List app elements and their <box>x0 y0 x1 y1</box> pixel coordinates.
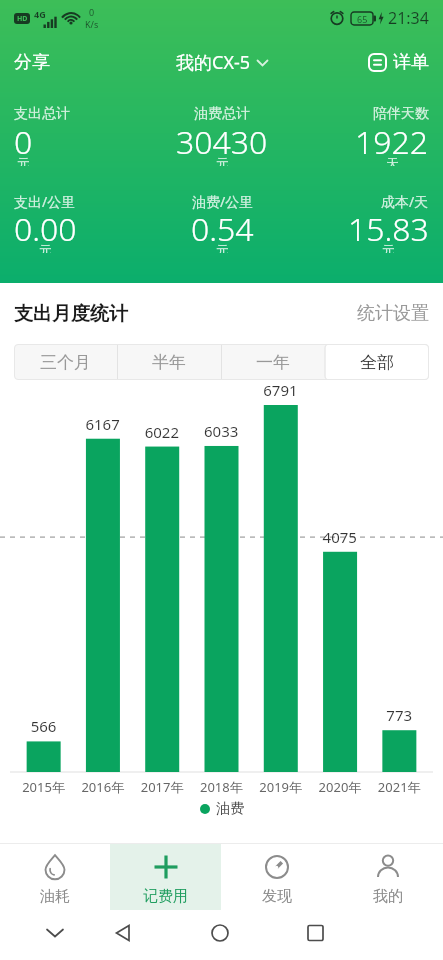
staticText: 支出/公里 <box>14 192 76 210</box>
staticText: 0 <box>89 6 95 18</box>
staticText: 记费用 <box>143 887 188 906</box>
staticText: 成本/天 <box>381 192 429 210</box>
button[interactable]: 我的CX-5 <box>176 50 268 75</box>
staticText: 油耗 <box>40 887 70 906</box>
staticText: 元 <box>17 155 30 166</box>
staticText: 油费总计 <box>194 105 250 123</box>
staticText: 我的 <box>373 887 403 906</box>
button[interactable]: 一年 <box>221 344 325 380</box>
staticText: 三个月 <box>40 352 91 373</box>
button[interactable] <box>99 910 147 956</box>
button[interactable] <box>196 910 244 956</box>
button[interactable]: 统计设置 <box>357 302 429 325</box>
staticText: 65 <box>357 13 368 25</box>
staticText: K/s <box>85 18 99 30</box>
button[interactable]: 油耗 <box>0 844 110 910</box>
button[interactable]: 记费用 <box>110 844 221 910</box>
staticText: 油费/公里 <box>192 192 254 210</box>
staticText: 一年 <box>256 352 290 373</box>
staticText: 详单 <box>393 51 429 74</box>
button[interactable]: 半年 <box>117 344 221 380</box>
staticText: 支出月度统计 <box>14 302 128 326</box>
staticText: 15.83 <box>348 207 429 243</box>
staticText: 4G <box>34 8 46 20</box>
staticText: HD <box>17 14 28 24</box>
staticText: 陪伴天数 <box>373 105 429 123</box>
staticText: 0.54 <box>191 207 254 243</box>
button[interactable]: 发现 <box>221 844 332 910</box>
staticText: 半年 <box>152 352 186 373</box>
staticText: 我的CX-5 <box>176 50 251 75</box>
staticText: 21:34 <box>388 7 429 29</box>
staticText: 油费 <box>216 800 244 818</box>
staticText: 统计设置 <box>357 302 429 325</box>
staticText: 1922 <box>355 120 429 156</box>
staticText: 全部 <box>360 352 394 373</box>
button[interactable] <box>31 910 79 956</box>
staticText: 元 <box>216 242 229 253</box>
button[interactable]: 分享 <box>14 51 50 74</box>
staticText: 天 <box>386 155 399 166</box>
staticText: 发现 <box>262 887 292 906</box>
button[interactable]: 三个月 <box>14 344 117 380</box>
staticText: 元 <box>216 155 229 166</box>
staticText: 30430 <box>176 120 268 156</box>
button[interactable] <box>291 910 339 956</box>
button[interactable]: 全部 <box>325 344 429 380</box>
staticText: 0.00 <box>14 207 77 243</box>
staticText: 分享 <box>14 51 50 74</box>
button[interactable]: 详单 <box>368 51 429 74</box>
staticText: 元 <box>39 242 52 253</box>
button[interactable]: 我的 <box>332 844 443 910</box>
staticText: 支出总计 <box>14 105 70 123</box>
staticText: 元 <box>382 242 395 253</box>
staticText: 0 <box>14 120 33 156</box>
